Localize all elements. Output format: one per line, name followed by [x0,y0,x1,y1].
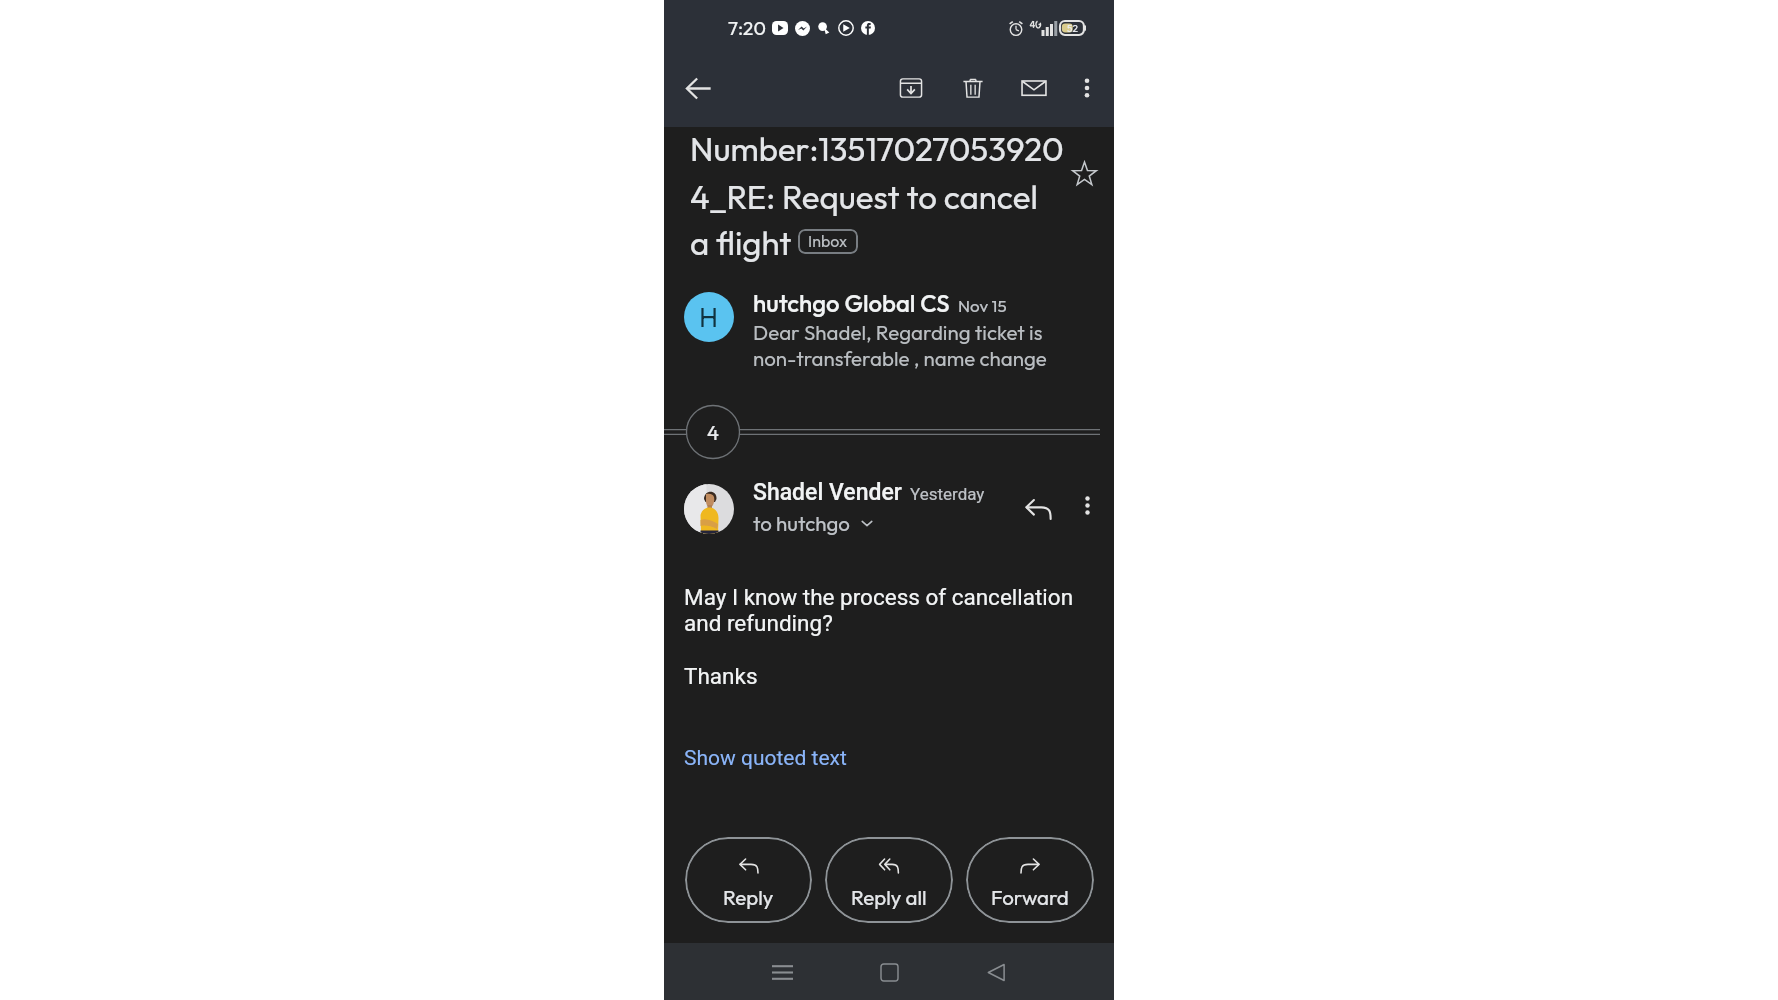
staticText: hutchgo Global CS [753,288,950,318]
staticText: 4 [707,420,719,445]
staticText: H [699,300,719,334]
button[interactable]: More options [1068,486,1106,524]
staticText: Show quoted text [684,746,847,771]
staticText: Forward [991,884,1069,910]
staticText: to hutchgo [753,510,850,536]
button[interactable]: Recents [755,945,809,999]
button[interactable]: Star [1061,150,1107,196]
staticText: Nov 15 [958,295,1007,316]
button[interactable]: Back [674,64,722,112]
button[interactable]: More options [1066,67,1108,109]
staticText: Reply all [851,884,927,910]
staticText: Shadel Vender [753,479,902,506]
button[interactable]: Reply [1017,488,1059,530]
staticText: Inbox [808,231,848,251]
button[interactable]: Archive [887,64,935,112]
staticText: Number:13517027053920 4_RE: Request to c… [690,128,1064,218]
button[interactable]: Back [969,945,1023,999]
button[interactable]: Delete [949,64,997,112]
button[interactable]: Mark unread [1010,64,1058,112]
staticText: Dear Shadel, Regarding ticket is non-tra… [753,319,1047,372]
staticText: Reply [723,884,774,910]
button[interactable]: Reply all [825,837,953,923]
button[interactable]: Home [862,945,916,999]
staticText: May I know the process of cancellation a… [684,584,1074,637]
staticText: Yesterday [910,484,985,504]
staticText: Thanks [684,663,758,689]
button[interactable]: Reply [685,837,812,923]
button[interactable]: Forward [966,837,1094,923]
staticText: a flight [690,222,792,264]
button[interactable]: Show quoted text [684,746,847,771]
staticText: 52 [1067,22,1078,35]
staticText: 7:20 [728,16,766,40]
